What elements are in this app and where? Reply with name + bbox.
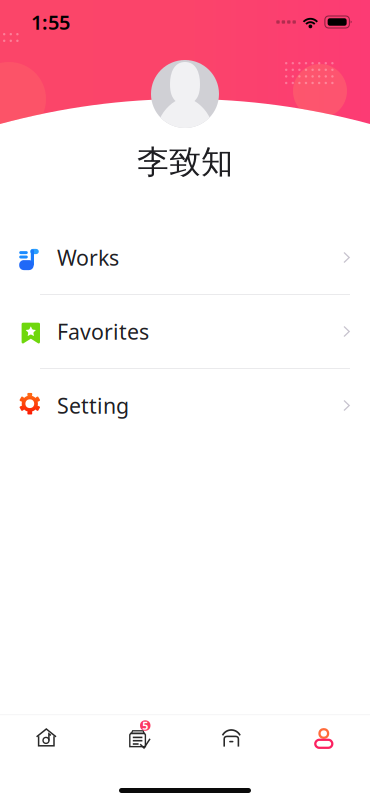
staticText: 5 — [142, 718, 148, 733]
button[interactable]: Works — [0, 221, 370, 294]
button[interactable]: Favorites — [0, 295, 370, 368]
button[interactable]: Tasks — [92, 715, 185, 771]
button[interactable]: Live — [185, 715, 277, 771]
staticText: 1:55 — [31, 9, 70, 35]
staticText: 李致知 — [137, 142, 233, 182]
button[interactable]: Home — [0, 715, 92, 771]
button[interactable]: Profile — [277, 715, 370, 771]
staticText: Works — [57, 243, 119, 272]
staticText: Favorites — [57, 317, 149, 346]
staticText: Setting — [57, 391, 129, 420]
button[interactable]: Setting — [0, 369, 370, 442]
